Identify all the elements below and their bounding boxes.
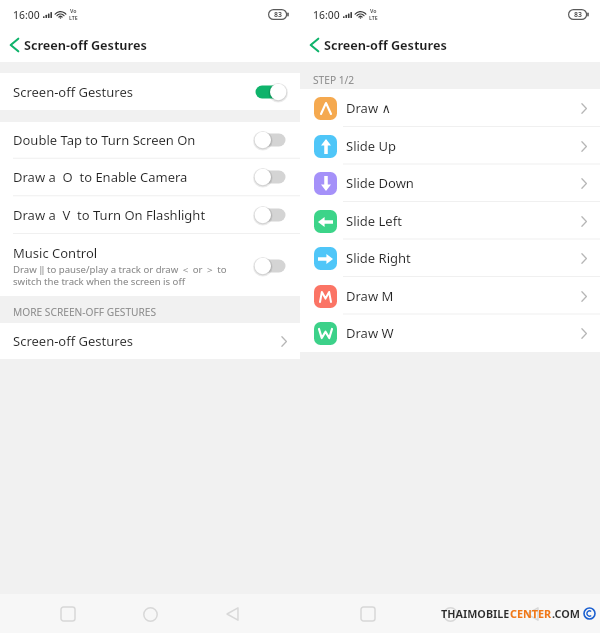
button[interactable]: Screen-off Gestures [0,73,300,110]
staticText: CENTER [510,606,552,621]
staticText: Draw M [346,287,581,305]
staticText: Slide Right [346,249,581,267]
staticText: LTE [369,14,378,21]
staticText: Draw a O to Enable Camera [13,168,188,186]
staticText: Draw ‖ to pause/play a track or draw ＜ o… [13,263,227,288]
staticText: Draw a V to Turn On Flashlight [13,206,206,224]
button[interactable]: Back [518,600,546,628]
button[interactable]: Double Tap to Turn Screen On [0,122,300,158]
staticText: 16:00 [13,8,40,22]
button[interactable]: Recent apps [354,600,382,628]
staticText: STEP 1/2 [313,73,355,87]
button[interactable]: Draw M [300,277,600,315]
staticText: 83 [574,10,583,20]
button[interactable]: Draw a V to Turn On Flashlight [0,196,300,234]
button[interactable]: Switch on [254,82,287,102]
staticText: Music Control [13,244,98,262]
staticText: Screen-off Gestures [13,83,133,101]
staticText: Slide Down [346,174,581,192]
staticText: Slide Up [346,137,581,155]
button[interactable]: Draw ∧ [300,89,600,127]
button[interactable]: Switch off [254,167,287,187]
staticText: LTE [69,14,78,21]
button[interactable]: Switch off [254,205,287,225]
staticText: MORE SCREEN-OFF GESTURES [13,305,157,319]
button[interactable]: Slide Left [300,202,600,240]
button[interactable]: Slide Down [300,164,600,202]
button[interactable]: Draw a O to Enable Camera [0,158,300,196]
button[interactable]: Draw W [300,314,600,352]
button[interactable]: Switch off [254,256,287,276]
button[interactable]: Home [136,600,164,628]
staticText: Slide Left [346,212,581,230]
staticText: .COM [552,606,580,621]
button[interactable]: Recent apps [54,600,82,628]
staticText: THAIMOBILE [441,606,510,621]
staticText: Draw W [346,324,581,342]
staticText: Vo [370,7,377,14]
staticText: 16:00 [313,8,340,22]
staticText: 83 [274,10,283,20]
button[interactable]: Slide Up [300,127,600,165]
staticText: Vo [70,7,77,14]
button[interactable]: Slide Right [300,239,600,277]
button[interactable]: Screen-off Gestures [0,323,300,359]
staticText: Double Tap to Turn Screen On [13,131,196,149]
button[interactable]: Back [4,35,24,55]
button[interactable]: Home [436,600,464,628]
button[interactable]: Switch off [254,130,287,150]
button[interactable]: Back [304,35,324,55]
staticText: Screen-off Gestures [13,332,281,350]
staticText: Draw ∧ [346,99,581,117]
staticText: Screen-off Gestures [324,37,447,54]
button[interactable]: Back [218,600,246,628]
button[interactable]: Music Control [0,234,300,297]
staticText: Screen-off Gestures [24,37,147,54]
